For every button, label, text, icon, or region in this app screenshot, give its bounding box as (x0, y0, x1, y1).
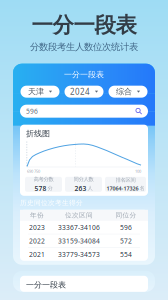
staticText: 578 (35, 184, 47, 193)
staticText: 572 (120, 236, 132, 245)
button[interactable]: 2024 (64, 86, 103, 98)
staticText: 596 (26, 107, 38, 116)
staticText: 33159-34084 (58, 236, 100, 245)
staticText: 同分人数 (73, 176, 93, 182)
staticText: 历史同位次考生得分 (20, 199, 83, 207)
staticText: 596 (120, 223, 132, 232)
staticText: 2021 (29, 250, 45, 259)
staticText: 年份 (30, 211, 44, 219)
staticText: 综合 (116, 87, 132, 97)
staticText: 分数段考生人数位次统计表 (30, 41, 138, 53)
staticText: 位次区间 (65, 211, 93, 219)
button[interactable]: 596 (20, 105, 148, 118)
staticText: 一分一段表 (64, 70, 104, 80)
staticText: 高考分数 (33, 176, 53, 182)
staticText: 同位分 (115, 211, 136, 219)
staticText: 分 (47, 185, 52, 192)
staticText: 33779-34573 (58, 250, 100, 259)
staticText: 33367-34106 (58, 223, 100, 232)
staticText: 2022 (29, 236, 45, 245)
staticText: 排名区间 (115, 177, 135, 183)
staticText: 690 750 (27, 168, 40, 174)
staticText: 2024 (70, 86, 90, 97)
staticText: 天津 (28, 87, 44, 97)
staticText: 100 (135, 168, 141, 174)
staticText: 一分一段表 (31, 12, 136, 38)
button[interactable]: 天津 (20, 86, 59, 98)
staticText: 人 (87, 185, 92, 192)
button[interactable]: 综合 (108, 86, 147, 98)
staticText: 一分一段表 (26, 280, 66, 290)
staticText: 名 (139, 185, 144, 192)
staticText: 554 (120, 250, 132, 259)
staticText: 17064-17326 (107, 185, 139, 192)
staticText: 2023 (29, 223, 45, 232)
staticText: 263 (75, 184, 87, 193)
staticText: 折线图 (26, 129, 50, 138)
